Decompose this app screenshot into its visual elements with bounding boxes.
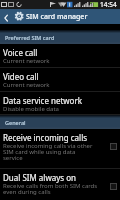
button[interactable]: Video call	[0, 68, 120, 92]
staticText: Data service network	[3, 95, 83, 106]
staticText: 14:54	[100, 0, 117, 9]
button[interactable]: Data service network	[0, 92, 120, 115]
staticText: Receive calls from both SIM cards even d…	[3, 182, 98, 196]
staticText: Preferred SIM card	[5, 34, 55, 41]
button[interactable]: Dual SIM always on	[0, 169, 120, 200]
staticText: Current network	[3, 81, 50, 89]
staticText: Dual SIM always on	[3, 172, 76, 183]
staticText: General	[5, 119, 26, 126]
staticText: Receive incoming calls via other SIM car…	[3, 142, 93, 162]
button[interactable]: Receive incoming calls	[0, 129, 120, 169]
staticText: Video call	[3, 71, 39, 82]
staticText: SIM card manager	[26, 12, 88, 22]
staticText: Voice call	[3, 47, 38, 58]
staticText: Current network	[3, 57, 50, 65]
button[interactable]: Navigate up	[0, 9, 14, 24]
staticText: Disable mobile data	[3, 105, 59, 113]
staticText: Receive incoming calls	[3, 132, 88, 143]
button[interactable]: Voice call	[0, 44, 120, 68]
